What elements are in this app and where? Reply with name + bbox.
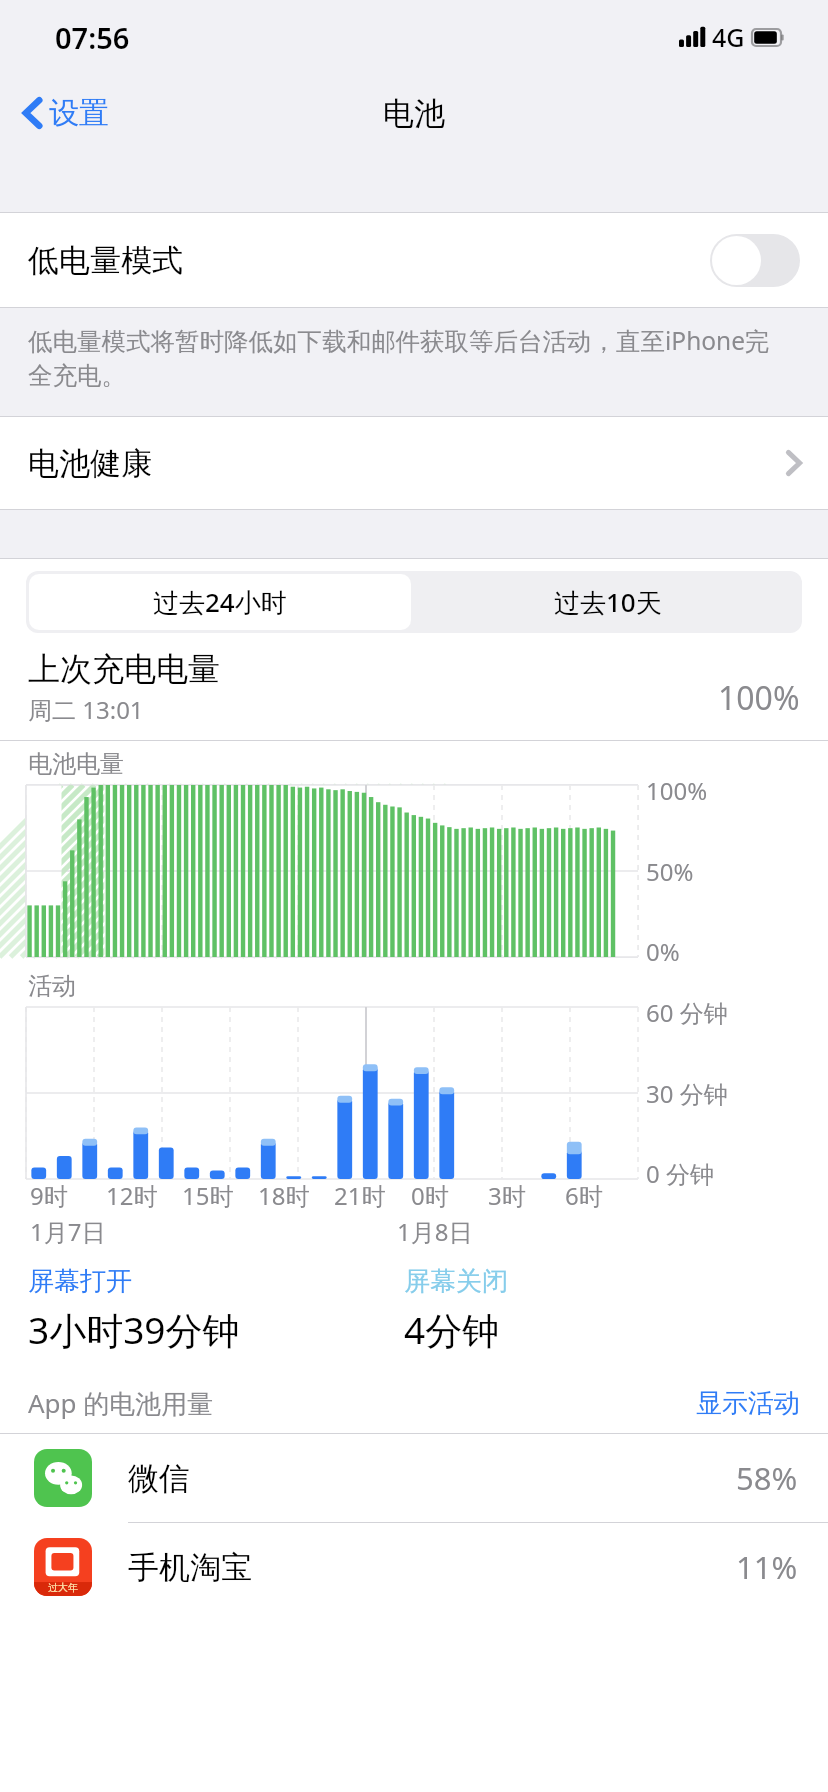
staticText: 15时 <box>182 1179 234 1212</box>
button[interactable]: 低电量模式开关 <box>710 234 800 287</box>
staticText: 3时 <box>488 1179 526 1212</box>
staticText: 0% <box>646 935 680 968</box>
staticText: 设置 <box>49 94 109 132</box>
staticText: 30 分钟 <box>646 1077 728 1110</box>
staticText: 4G <box>712 20 745 54</box>
staticText: 58% <box>736 1457 798 1499</box>
staticText: 1月8日 <box>397 1215 473 1248</box>
button[interactable]: 设置 <box>0 86 121 140</box>
staticText: 3小时39分钟 <box>28 1304 240 1355</box>
staticText: 电池电量 <box>28 749 124 779</box>
staticText: 微信 <box>128 1459 190 1498</box>
button[interactable]: 过去24小时 <box>29 574 411 630</box>
staticText: 屏幕打开 <box>28 1265 132 1298</box>
staticText: 6时 <box>565 1179 603 1212</box>
button[interactable]: 微信 <box>0 1434 828 1522</box>
staticText: 0时 <box>411 1179 449 1212</box>
staticText: 100% <box>718 676 800 720</box>
button[interactable]: 低电量模式 <box>0 213 828 307</box>
staticText: 显示活动 <box>696 1387 800 1420</box>
staticText: 60 分钟 <box>646 996 728 1029</box>
staticText: 12时 <box>106 1179 158 1212</box>
staticText: 手机淘宝 <box>128 1548 252 1587</box>
staticText: 11% <box>736 1546 798 1588</box>
staticText: 上次充电电量 <box>28 649 220 689</box>
staticText: App 的电池用量 <box>28 1385 214 1421</box>
staticText: 9时 <box>30 1179 68 1212</box>
staticText: 1月7日 <box>30 1215 106 1248</box>
staticText: 07:56 <box>55 18 130 57</box>
button[interactable]: 过大年 <box>0 1523 828 1611</box>
staticText: 低电量模式 <box>28 241 183 280</box>
staticText: 过大年 <box>48 1581 78 1594</box>
staticText: 4分钟 <box>404 1304 500 1355</box>
staticText: 活动 <box>28 971 76 1001</box>
staticText: 21时 <box>334 1179 386 1212</box>
staticText: 18时 <box>258 1179 310 1212</box>
staticText: 屏幕关闭 <box>404 1265 508 1298</box>
button[interactable]: 电池健康 <box>0 417 828 509</box>
staticText: 100% <box>646 774 708 807</box>
staticText: 周二 13:01 <box>28 693 144 726</box>
staticText: 过去24小时 <box>153 584 287 620</box>
staticText: 电池 <box>383 94 445 133</box>
staticText: 过去10天 <box>554 584 662 620</box>
button[interactable]: 显示活动 <box>696 1387 800 1420</box>
staticText: 低电量模式将暂时降低如下载和邮件获取等后台活动，直至iPhone完全充电。 <box>28 324 788 392</box>
staticText: 电池健康 <box>28 444 152 483</box>
button[interactable]: 过去10天 <box>414 571 802 633</box>
staticText: 50% <box>646 855 694 888</box>
staticText: 0 分钟 <box>646 1157 714 1190</box>
